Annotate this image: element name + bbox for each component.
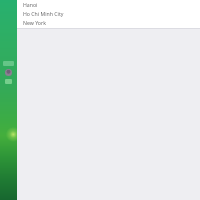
staticText: Ho Chi Minh City (23, 10, 64, 17)
staticText: Hanoi (23, 1, 38, 8)
button[interactable]: Account (5, 69, 12, 76)
button[interactable]: Hanoi (17, 0, 200, 9)
button[interactable]: New York (17, 18, 200, 27)
button[interactable]: Ho Chi Minh City (17, 9, 200, 18)
button[interactable]: Label (3, 61, 14, 66)
button[interactable]: Menu (5, 79, 12, 84)
staticText: New York (23, 19, 46, 26)
